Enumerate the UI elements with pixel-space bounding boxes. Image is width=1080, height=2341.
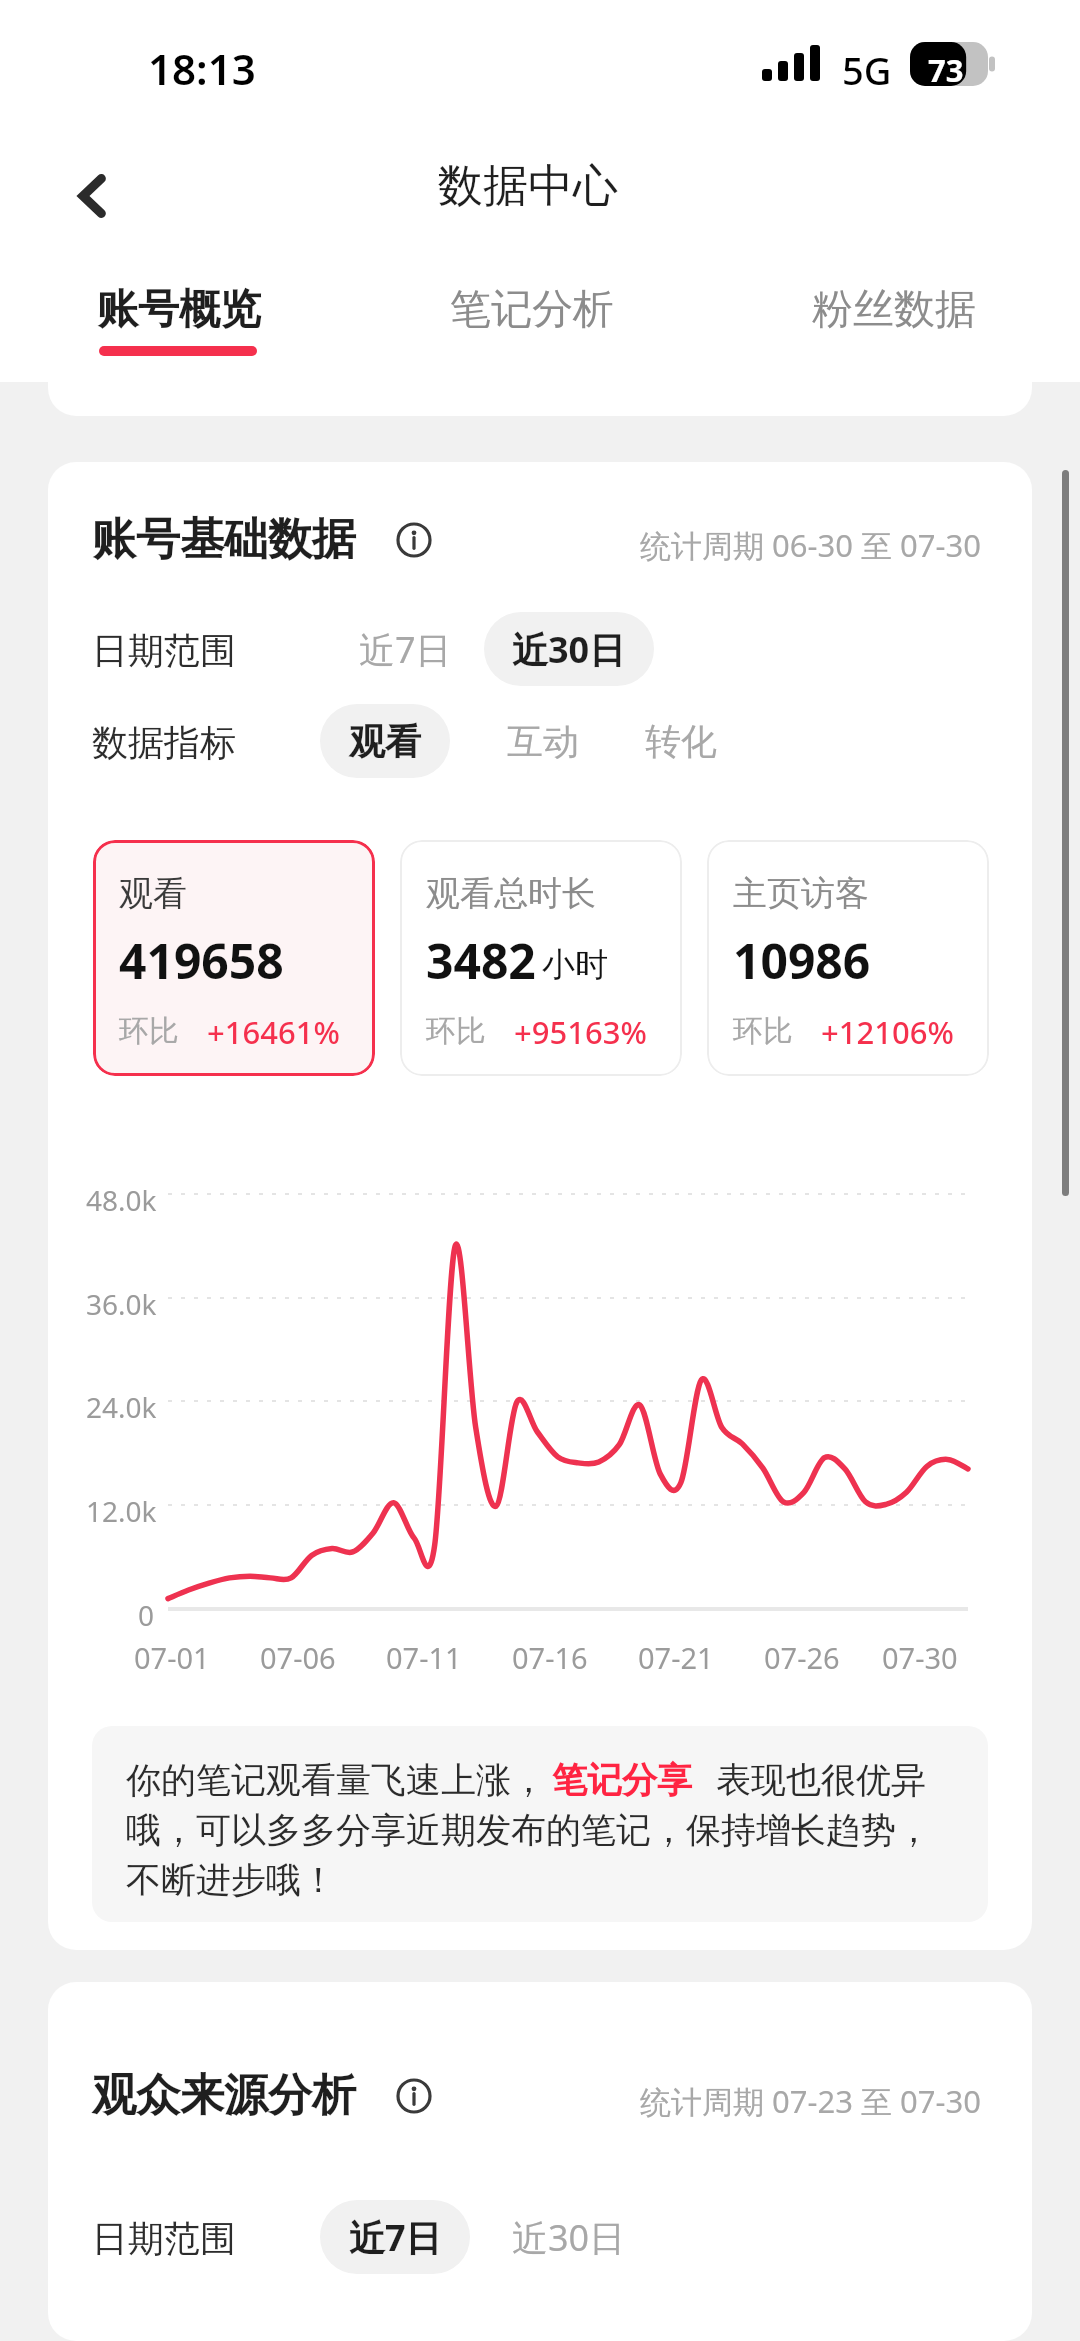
staticText: 07-01	[134, 1638, 210, 1677]
staticText: 环比	[119, 1012, 179, 1050]
button[interactable]: 近7日	[330, 612, 480, 686]
staticText: 近30日	[512, 625, 626, 674]
staticText: 粉丝数据	[812, 284, 976, 336]
staticText: 73	[928, 49, 964, 91]
staticText: 观看	[119, 872, 187, 915]
staticText: 36.0k	[86, 1285, 157, 1323]
staticText: 07-16	[512, 1638, 588, 1677]
staticText: 07-26	[764, 1638, 840, 1677]
button[interactable]: 转化	[616, 704, 746, 778]
staticText: 转化	[645, 719, 717, 764]
button[interactable]: 近30日	[484, 2200, 654, 2274]
staticText: 表现也很优异	[716, 1758, 926, 1802]
staticText: 观众来源分析	[92, 2068, 356, 2123]
staticText: 24.0k	[86, 1388, 157, 1426]
staticText: 419658	[119, 928, 284, 993]
staticText: 观看	[349, 719, 421, 764]
staticText: 数据中心	[438, 158, 618, 215]
staticText: 数据指标	[92, 720, 236, 765]
button[interactable]: 互动	[478, 704, 608, 778]
button[interactable]: 观看总时长	[400, 840, 682, 1076]
button[interactable]: 粉丝数据	[790, 268, 995, 364]
button[interactable]: 近7日	[320, 2200, 470, 2274]
staticText: 统计周期 07-23 至 07-30	[640, 2080, 981, 2122]
staticText: 日期范围	[92, 2216, 236, 2261]
staticText: 笔记分享	[552, 1758, 692, 1802]
staticText: 互动	[507, 719, 579, 764]
staticText: +95163%	[514, 1011, 647, 1053]
staticText: 日期范围	[92, 628, 236, 673]
staticText: 小时	[542, 944, 608, 986]
staticText: 哦，可以多多分享近期发布的笔记，保持增长趋势，	[126, 1808, 931, 1852]
button[interactable]: 主页访客	[707, 840, 989, 1076]
button[interactable]: 近30日	[484, 612, 654, 686]
staticText: 07-06	[260, 1638, 336, 1677]
staticText: 10986	[733, 928, 871, 993]
staticText: 07-11	[386, 1638, 462, 1677]
staticText: 近30日	[512, 2213, 626, 2262]
staticText: 3482	[426, 928, 536, 993]
staticText: 观看总时长	[426, 872, 596, 915]
staticText: 48.0k	[86, 1181, 157, 1219]
button[interactable]: Info	[396, 2078, 432, 2114]
button[interactable]: Back	[38, 140, 150, 252]
staticText: 5G	[842, 44, 892, 96]
staticText: 近7日	[359, 625, 452, 674]
button[interactable]: 账号概览	[75, 268, 280, 364]
staticText: 18:13	[148, 40, 256, 97]
staticText: 07-30	[882, 1638, 958, 1677]
staticText: 12.0k	[86, 1492, 157, 1530]
button[interactable]: 观看	[320, 704, 450, 778]
staticText: 环比	[733, 1012, 793, 1050]
staticText: 不断进步哦！	[126, 1858, 336, 1902]
staticText: +12106%	[821, 1011, 954, 1053]
staticText: 近7日	[349, 2213, 442, 2262]
staticText: 你的笔记观看量飞速上涨，	[126, 1758, 546, 1802]
button[interactable]: 笔记分析	[428, 268, 633, 364]
staticText: 笔记分析	[450, 284, 614, 336]
staticText: 环比	[426, 1012, 486, 1050]
staticText: +16461%	[207, 1011, 340, 1053]
staticText: 账号概览	[97, 284, 261, 336]
staticText: 07-21	[638, 1638, 714, 1677]
staticText: 0	[138, 1596, 155, 1634]
staticText: 统计周期 06-30 至 07-30	[640, 524, 981, 566]
button[interactable]: Info	[396, 522, 432, 558]
staticText: 主页访客	[733, 872, 869, 915]
button[interactable]: 观看	[93, 840, 375, 1076]
staticText: 账号基础数据	[92, 512, 356, 567]
